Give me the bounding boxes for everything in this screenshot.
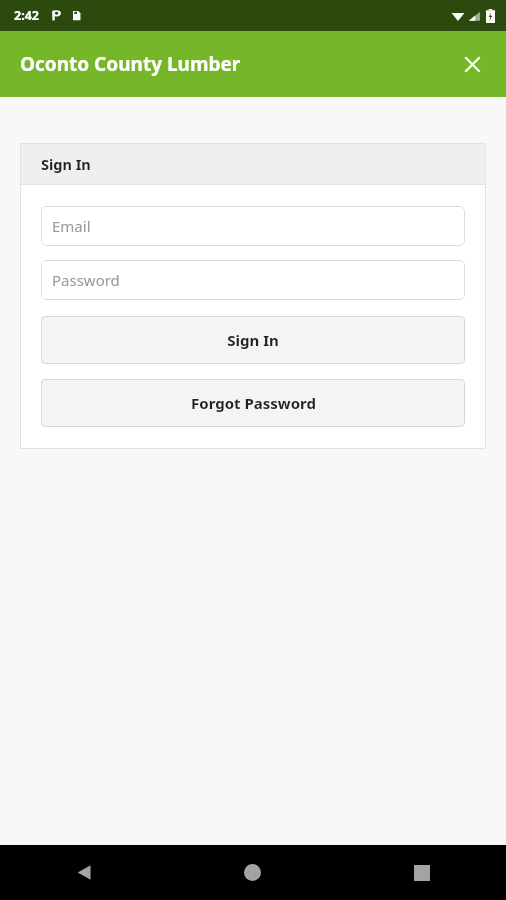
staticText: Sign In [41,154,91,174]
button[interactable]: Close [450,42,494,86]
staticText: Email [52,216,91,236]
button[interactable]: Sign In [41,316,465,364]
staticText: 2:42 [14,7,39,24]
button[interactable]: Email [41,206,465,246]
button[interactable]: Recent apps [337,845,506,900]
button[interactable]: Home [168,845,337,900]
button[interactable]: Password [41,260,465,300]
staticText: Sign In [227,330,279,350]
button[interactable]: Back [0,845,168,900]
staticText: Oconto County Lumber [20,51,241,77]
staticText: Password [52,270,120,290]
staticText: Forgot Password [191,393,316,413]
button[interactable]: Forgot Password [41,379,465,427]
